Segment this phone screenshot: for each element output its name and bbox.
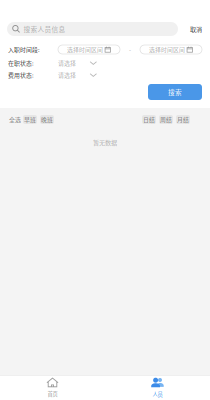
button[interactable]: 全选 [9,115,21,124]
staticText: 请选择 [58,59,76,67]
staticText: 首页 [47,390,57,398]
button[interactable]: 请选择 [58,71,97,79]
staticText: 人员 [152,390,162,398]
staticText: 请选择 [58,71,76,79]
button[interactable]: 取消 [189,22,203,36]
staticText: 早班 [24,115,36,124]
button[interactable]: 早班 [23,115,37,124]
staticText: 费用状态: [8,71,34,79]
staticText: 搜索 [168,87,182,97]
staticText: 入职时间段: [8,45,40,54]
button[interactable]: 请选择 [58,59,97,67]
staticText: 取消 [190,25,202,33]
button[interactable]: 月结 [176,115,190,124]
button[interactable]: 晚班 [40,115,54,124]
staticText: 全选 [9,115,21,124]
button[interactable]: 首页 [0,375,105,400]
staticText: - [129,45,131,54]
staticText: 选择时间区间 [149,45,185,54]
staticText: 搜索人员信息 [23,24,65,34]
button[interactable]: 日结 [142,115,156,124]
button[interactable]: 搜索 [148,84,202,100]
staticText: 选择时间区间 [67,45,103,54]
button[interactable]: 人员 [105,375,210,400]
staticText: 日结 [143,115,155,124]
staticText: 周结 [160,115,172,124]
staticText: 在职状态: [8,59,34,67]
staticText: 晚班 [41,115,53,124]
button[interactable]: 选择时间区间 [58,45,120,54]
staticText: 暂无数据 [93,138,117,147]
button[interactable]: 选择时间区间 [140,45,202,54]
button[interactable]: 周结 [159,115,173,124]
staticText: 月结 [177,115,189,124]
